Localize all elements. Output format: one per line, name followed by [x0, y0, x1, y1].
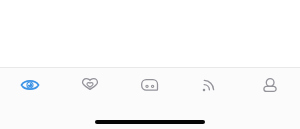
button[interactable]: Messages — [120, 68, 180, 101]
button[interactable]: Watch — [0, 68, 60, 101]
button[interactable]: Profile — [240, 68, 300, 101]
button[interactable]: Feed — [180, 68, 240, 101]
button[interactable]: Favorites — [60, 68, 120, 101]
